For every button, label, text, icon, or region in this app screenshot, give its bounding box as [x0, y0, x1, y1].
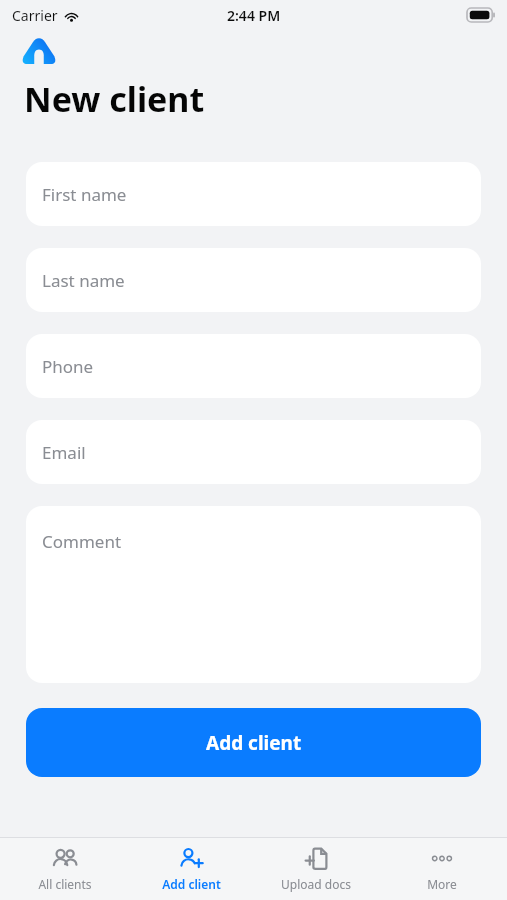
button[interactable]: Email — [26, 420, 481, 484]
button[interactable]: Add client — [26, 708, 481, 777]
button[interactable]: First name — [26, 162, 481, 226]
staticText: Email — [42, 441, 86, 464]
staticText: New client — [24, 76, 205, 122]
staticText: 2:44 PM — [227, 6, 281, 25]
button[interactable]: Last name — [26, 248, 481, 312]
staticText: More — [427, 876, 457, 892]
staticText: Phone — [42, 355, 94, 378]
button[interactable]: All clients — [5, 846, 125, 892]
button[interactable]: More — [382, 846, 502, 892]
staticText: All clients — [38, 876, 92, 892]
staticText: Comment — [42, 530, 122, 553]
staticText: Carrier — [12, 6, 58, 25]
staticText: Upload docs — [281, 876, 351, 892]
staticText: Last name — [42, 269, 125, 292]
button[interactable]: Phone — [26, 334, 481, 398]
staticText: Add client — [162, 876, 221, 892]
staticText: First name — [42, 183, 127, 206]
button[interactable]: Upload docs — [256, 846, 376, 892]
staticText: Add client — [206, 730, 302, 756]
button[interactable]: Add client — [131, 846, 251, 892]
button[interactable]: Comment — [26, 506, 481, 683]
